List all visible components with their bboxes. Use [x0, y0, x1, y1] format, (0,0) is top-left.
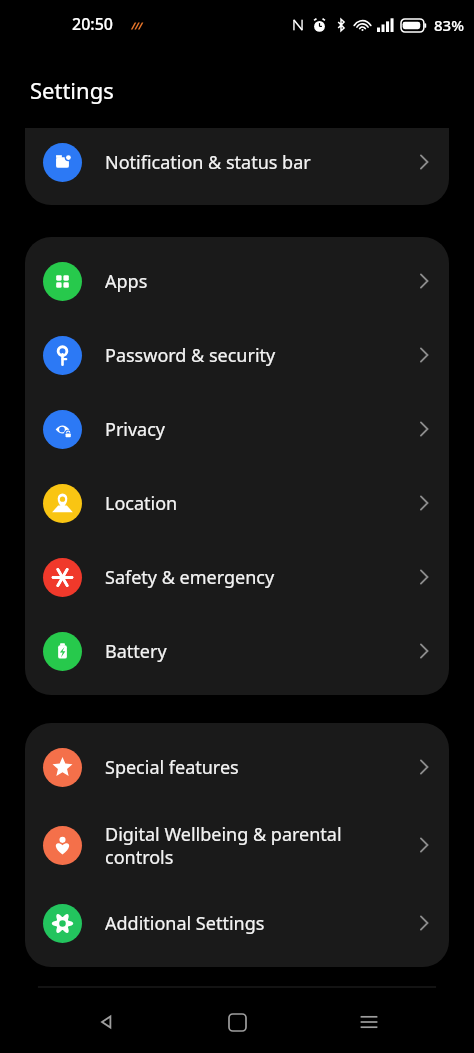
button[interactable]: Password & security — [25, 318, 449, 392]
button[interactable]: Special features — [25, 730, 449, 804]
button[interactable]: Location — [25, 466, 449, 540]
button[interactable]: Digital Wellbeing & parental controls — [25, 804, 449, 886]
staticText: Apps — [105, 269, 403, 294]
button[interactable]: Back — [80, 996, 132, 1048]
staticText: Location — [105, 491, 403, 516]
staticText: Settings — [30, 75, 114, 105]
button[interactable]: Safety & emergency — [25, 540, 449, 614]
staticText: Safety & emergency — [105, 565, 403, 590]
staticText: Additional Settings — [105, 911, 403, 936]
staticText: Digital Wellbeing & parental controls — [105, 822, 403, 869]
button[interactable]: Recent apps — [343, 996, 395, 1048]
button[interactable]: Home — [211, 996, 263, 1048]
staticText: Notification & status bar — [105, 150, 403, 175]
staticText: Special features — [105, 755, 403, 780]
button[interactable]: Additional Settings — [25, 886, 449, 960]
staticText: Password & security — [105, 343, 403, 368]
button[interactable]: Notification & status bar — [25, 128, 449, 199]
button[interactable]: Privacy — [25, 392, 449, 466]
staticText: Privacy — [105, 417, 403, 442]
staticText: 83% — [434, 15, 464, 35]
button[interactable]: Battery — [25, 614, 449, 688]
staticText: 20:50 — [72, 13, 113, 35]
button[interactable]: Apps — [25, 244, 449, 318]
staticText: Battery — [105, 639, 403, 664]
